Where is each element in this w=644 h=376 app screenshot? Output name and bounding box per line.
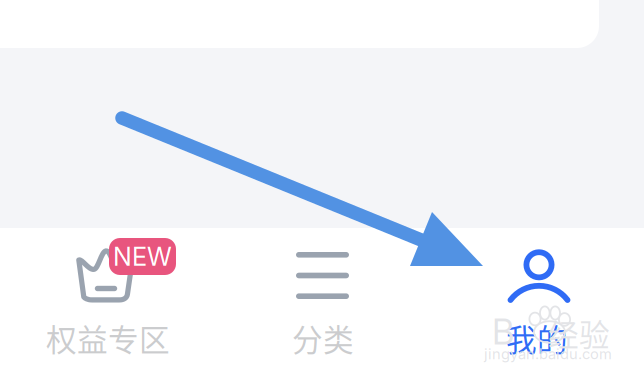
- staticText: jingyan.baidu.com: [484, 345, 612, 363]
- staticText: NEW: [113, 241, 172, 272]
- button[interactable]: 我的: [430, 228, 644, 376]
- staticText: 权益专区: [46, 316, 170, 360]
- staticText: 经验: [548, 311, 610, 355]
- button[interactable]: 权益专区: [0, 228, 216, 376]
- staticText: 分类: [292, 316, 354, 360]
- staticText: 我的: [506, 316, 568, 360]
- staticText: B: [492, 311, 514, 353]
- button[interactable]: 分类: [216, 228, 430, 376]
